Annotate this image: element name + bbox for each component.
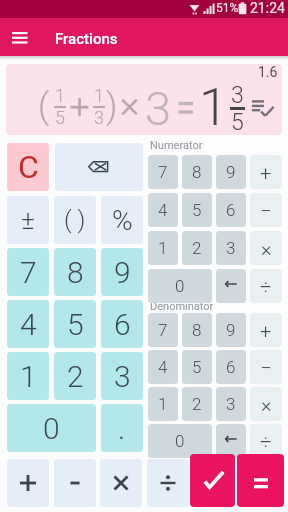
button[interactable]: 8 <box>54 248 96 296</box>
staticText: 7 <box>158 162 168 182</box>
button[interactable] <box>100 459 142 507</box>
button[interactable]: ÷ <box>250 269 282 303</box>
button[interactable]: 6 <box>101 300 143 348</box>
staticText: 6 <box>226 357 236 377</box>
staticText: . <box>118 411 126 446</box>
button[interactable]: + <box>250 313 282 347</box>
staticText: + <box>260 319 272 342</box>
button[interactable]: 2 <box>182 387 212 421</box>
staticText: 5 <box>192 200 202 220</box>
staticText: ( <box>38 86 50 127</box>
button[interactable] <box>54 459 96 507</box>
staticText: 1 <box>20 359 37 394</box>
staticText: 3 <box>226 394 236 414</box>
staticText: 51% <box>216 1 239 15</box>
button[interactable]: 3 <box>101 352 143 400</box>
button[interactable]: 1 <box>7 352 49 400</box>
button[interactable]: 7 <box>7 248 49 296</box>
button[interactable]: 9 <box>216 155 246 189</box>
button[interactable] <box>7 459 49 507</box>
button[interactable]: 1 <box>148 231 178 265</box>
staticText: − <box>260 199 272 222</box>
staticText: 1 <box>158 394 168 414</box>
button[interactable] <box>216 424 246 458</box>
staticText: 0 <box>43 411 60 446</box>
button[interactable] <box>55 143 143 191</box>
staticText: 4 <box>158 200 168 220</box>
staticText: 2 <box>192 238 202 258</box>
staticText: + <box>260 161 272 184</box>
button[interactable]: 7 <box>148 155 178 189</box>
staticText: 3 <box>231 82 244 107</box>
button[interactable]: 4 <box>148 193 178 227</box>
staticText: 6 <box>226 200 236 220</box>
button[interactable]: 9 <box>101 248 143 296</box>
button[interactable] <box>147 459 189 507</box>
button[interactable]: C <box>7 143 49 191</box>
staticText: 1.6 <box>258 64 278 80</box>
staticText: 1 <box>158 238 168 258</box>
button[interactable]: . <box>101 404 143 452</box>
staticText: 8 <box>192 320 202 340</box>
button[interactable]: − <box>250 193 282 227</box>
button[interactable]: × <box>250 231 282 265</box>
button[interactable]: ± <box>7 196 49 244</box>
button[interactable]: 8 <box>182 155 212 189</box>
staticText: 1 <box>55 85 65 106</box>
button[interactable] <box>216 269 246 303</box>
staticText: ÷ <box>260 430 272 453</box>
button[interactable]: 4 <box>7 300 49 348</box>
button[interactable]: + <box>250 155 282 189</box>
button[interactable]: × <box>250 387 282 421</box>
staticText: 7 <box>20 255 37 290</box>
button[interactable]: 6 <box>216 350 246 384</box>
button[interactable]: 5 <box>182 193 212 227</box>
staticText: − <box>260 356 272 379</box>
staticText: 9 <box>114 255 131 290</box>
staticText: 5 <box>55 107 65 128</box>
button[interactable]: 3 <box>216 387 246 421</box>
button[interactable]: 2 <box>54 352 96 400</box>
button[interactable]: 9 <box>216 313 246 347</box>
staticText: 3 <box>145 81 172 136</box>
staticText: 3 <box>114 359 131 394</box>
button[interactable]: 0 <box>7 404 96 452</box>
button[interactable]: 8 <box>182 313 212 347</box>
staticText: 2 <box>67 359 84 394</box>
staticText: 0 <box>175 276 185 296</box>
button[interactable]: % <box>101 196 143 244</box>
staticText: 0 <box>175 431 185 451</box>
button[interactable]: 7 <box>148 313 178 347</box>
button[interactable]: 1 <box>148 387 178 421</box>
staticText: 7 <box>158 320 168 340</box>
staticText: 3 <box>94 107 104 128</box>
button[interactable] <box>6 27 34 49</box>
staticText: 21:24 <box>250 0 285 16</box>
button[interactable]: 5 <box>182 350 212 384</box>
staticText: % <box>112 204 133 237</box>
staticText: 5 <box>192 357 202 377</box>
button[interactable]: 2 <box>182 231 212 265</box>
staticText: ( ) <box>64 206 86 234</box>
staticText: 1 <box>199 77 228 138</box>
staticText: 5 <box>67 307 84 342</box>
button[interactable] <box>190 454 235 507</box>
button[interactable]: − <box>250 350 282 384</box>
button[interactable]: 4 <box>148 350 178 384</box>
staticText: ± <box>21 205 35 235</box>
staticText: 2 <box>192 394 202 414</box>
button[interactable]: 0 <box>148 424 212 458</box>
staticText: 9 <box>226 320 236 340</box>
staticText: 5 <box>231 109 244 136</box>
staticText: 8 <box>67 255 84 290</box>
staticText: 3 <box>226 238 236 258</box>
staticText: 4 <box>20 307 37 342</box>
button[interactable]: 6 <box>216 193 246 227</box>
button[interactable]: 5 <box>54 300 96 348</box>
button[interactable]: ( ) <box>54 196 96 244</box>
button[interactable]: ÷ <box>250 424 282 458</box>
button[interactable] <box>237 454 284 507</box>
staticText: ) <box>106 86 118 127</box>
button[interactable]: 0 <box>148 269 212 303</box>
button[interactable]: 3 <box>216 231 246 265</box>
